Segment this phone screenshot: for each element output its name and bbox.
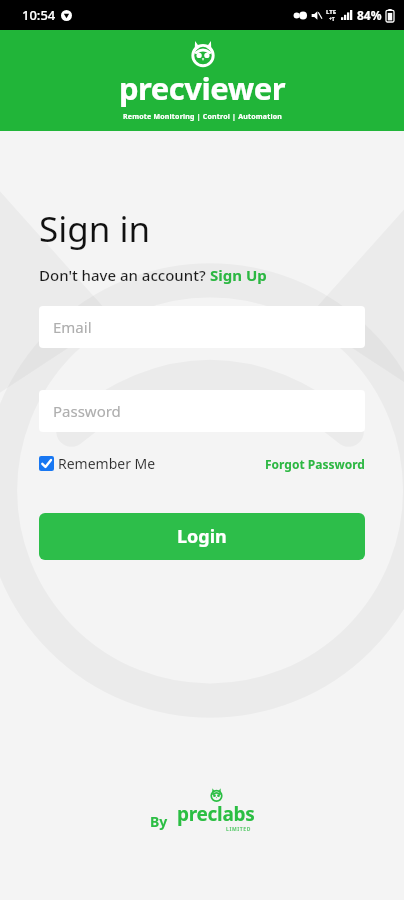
staticText: 84% — [357, 7, 382, 23]
button[interactable]: Email — [39, 306, 365, 348]
button[interactable]: Remember Me — [39, 454, 156, 473]
staticText: Sign Up — [210, 265, 267, 285]
staticText: LIMITED — [226, 826, 251, 833]
staticText: Remember Me — [58, 454, 156, 473]
staticText: Password — [53, 401, 121, 421]
staticText: +T — [329, 16, 335, 23]
staticText: precviewer — [119, 67, 286, 109]
staticText: Forgot Password — [265, 456, 365, 472]
button[interactable]: Login — [39, 513, 365, 560]
staticText: Sign in — [39, 205, 151, 253]
staticText: Remote Monitoring | Control | Automation — [123, 112, 283, 122]
staticText: preclabs — [177, 801, 255, 827]
staticText: Login — [177, 524, 227, 549]
button[interactable]: Forgot Password — [265, 456, 365, 472]
staticText: By — [150, 812, 168, 831]
staticText: Email — [53, 317, 92, 337]
button[interactable]: Password — [39, 390, 365, 432]
staticText: 10:54 — [22, 6, 56, 24]
button[interactable]: Sign Up — [210, 265, 267, 285]
staticText: LTE — [326, 8, 337, 16]
staticText: Don't have an account? — [39, 265, 210, 285]
